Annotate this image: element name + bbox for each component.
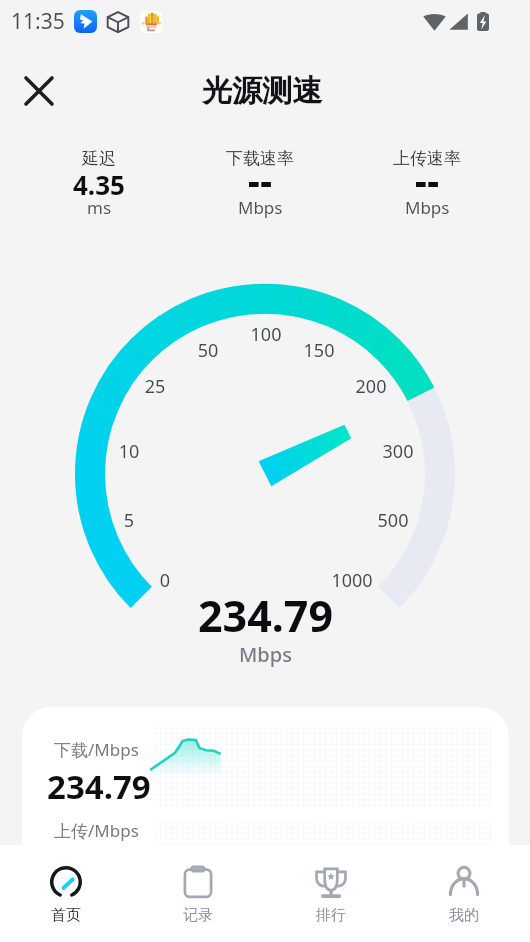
staticText: Mbps: [238, 196, 283, 219]
staticText: 300: [368, 439, 428, 464]
staticText: 下载/Mbps: [54, 738, 139, 761]
staticText: 25: [125, 374, 185, 399]
staticText: 首页: [51, 906, 81, 925]
staticText: 排行: [316, 906, 346, 925]
staticText: 100: [236, 322, 296, 347]
staticText: 记录: [183, 906, 213, 925]
staticText: 我的: [449, 906, 479, 925]
button[interactable]: 记录: [132, 845, 264, 925]
staticText: ms: [87, 196, 112, 219]
button[interactable]: 我的: [397, 845, 530, 925]
staticText: 200: [341, 374, 401, 399]
staticText: 11:35: [11, 7, 65, 36]
button[interactable]: 排行: [264, 845, 397, 925]
button[interactable]: Close: [15, 67, 63, 115]
staticText: Mbps: [405, 196, 450, 219]
button[interactable]: 首页: [0, 845, 132, 925]
button[interactable]: 下载/Mbps: [22, 707, 509, 907]
staticText: 234.79: [198, 586, 334, 645]
staticText: 234.79: [47, 764, 151, 809]
staticText: 50: [178, 338, 238, 363]
staticText: 4.35: [73, 167, 125, 202]
staticText: 光源测速: [202, 72, 322, 110]
staticText: 上传/Mbps: [54, 819, 139, 842]
staticText: 延迟: [82, 148, 116, 169]
staticText: 1000: [322, 568, 382, 593]
staticText: 10: [99, 439, 159, 464]
staticText: 150: [289, 338, 349, 363]
staticText: 5: [99, 508, 159, 533]
staticText: 0: [135, 568, 195, 593]
staticText: Mbps: [239, 641, 292, 668]
staticText: 下载速率: [226, 148, 294, 169]
staticText: 500: [363, 508, 423, 533]
staticText: 上传速率: [393, 148, 461, 169]
